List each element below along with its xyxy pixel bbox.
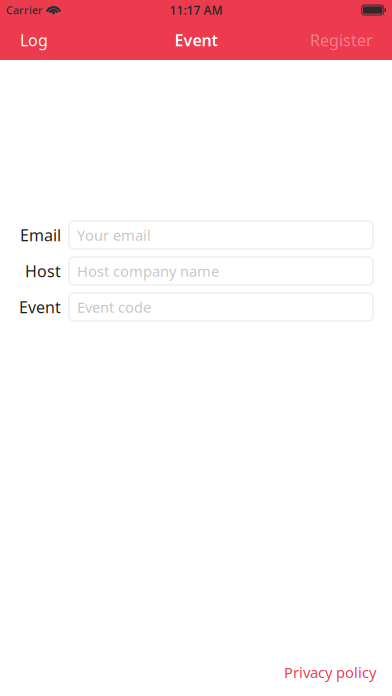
staticText: Carrier bbox=[6, 3, 43, 17]
staticText: Host company name bbox=[77, 261, 219, 281]
staticText: Log bbox=[20, 29, 48, 51]
staticText: 11:17 AM bbox=[169, 2, 222, 18]
button[interactable]: Email bbox=[69, 221, 373, 249]
staticText: Event code bbox=[77, 297, 151, 317]
button[interactable]: Log bbox=[0, 20, 60, 60]
staticText: Event bbox=[174, 29, 217, 51]
button[interactable]: Register bbox=[298, 20, 392, 60]
staticText: Event bbox=[19, 296, 61, 318]
staticText: Your email bbox=[77, 225, 151, 245]
button[interactable]: Event bbox=[69, 293, 373, 321]
button[interactable]: Host bbox=[69, 257, 373, 285]
staticText: Host bbox=[25, 260, 61, 282]
staticText: Email bbox=[20, 224, 61, 246]
staticText: Register bbox=[310, 29, 373, 51]
button[interactable]: Privacy policy bbox=[274, 654, 392, 696]
staticText: Privacy policy bbox=[284, 662, 376, 682]
